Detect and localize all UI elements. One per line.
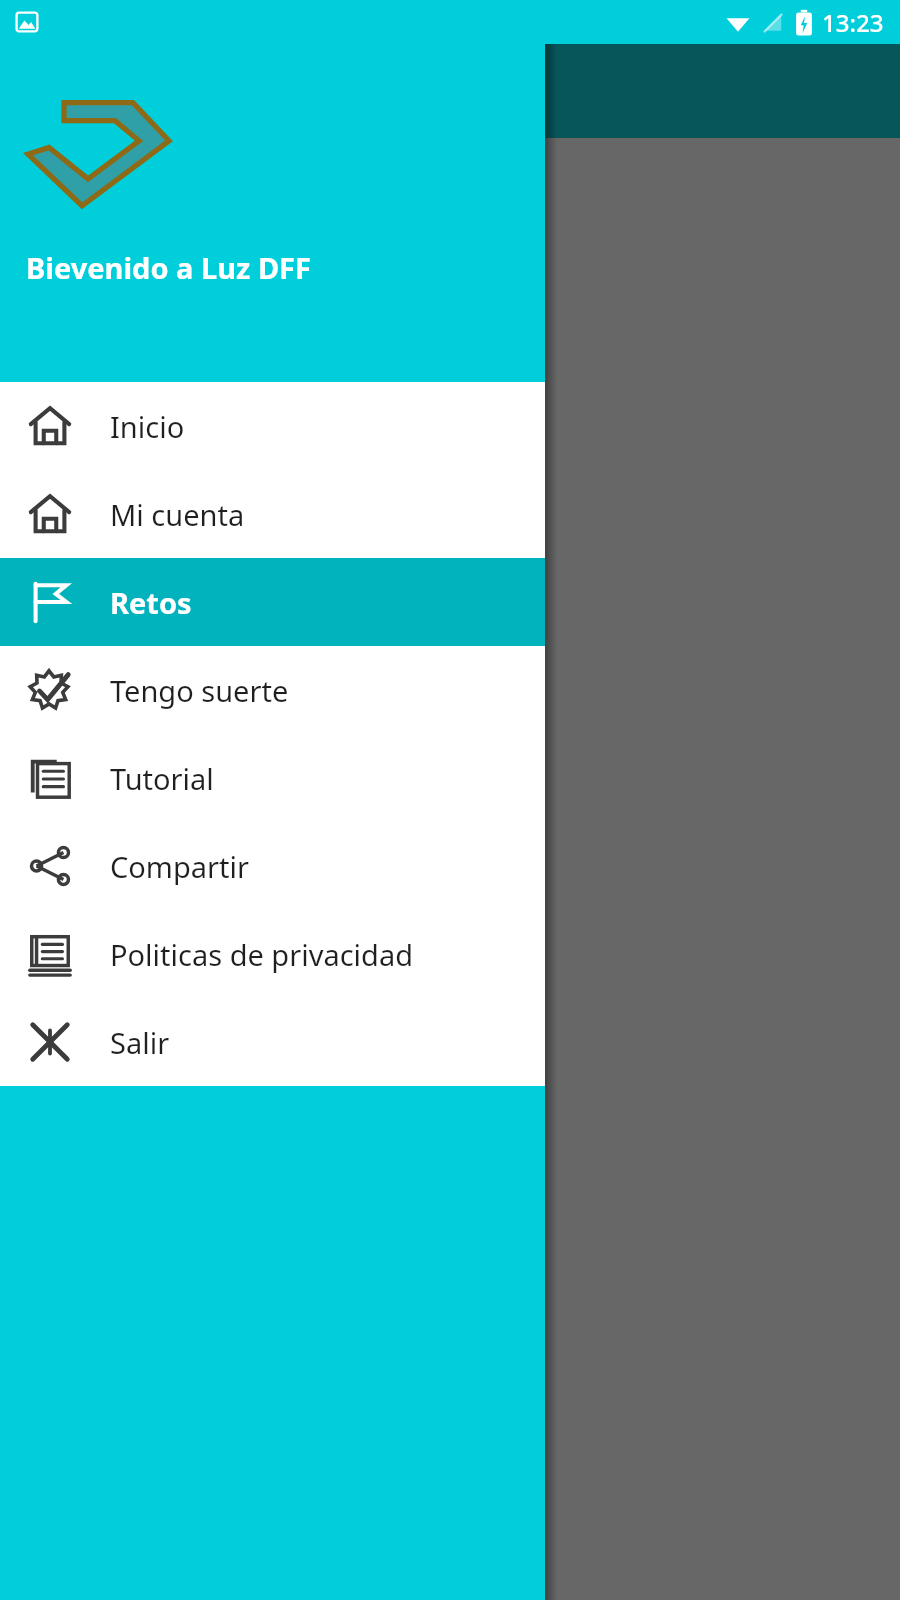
staticText: VALIENTES [17,884,447,990]
button[interactable]: Salir [0,998,545,1086]
staticText: VALIENTES [23,884,453,990]
button[interactable]: Inicio [0,382,545,470]
staticText: VALIENTES [20,884,450,990]
button[interactable]: Tutorial [0,734,545,822]
staticText: Compartir [110,847,249,886]
staticText: Mi cuenta [110,495,245,534]
staticText: Inicio [110,407,185,446]
button[interactable]: Tengo suerte [0,646,545,734]
staticText: valientes!!!👊 [48,785,235,826]
staticText: DE [20,994,121,1100]
staticText: solo tendrás que responder [48,689,438,730]
staticText: VALIENTES [20,881,450,987]
staticText: Salir [110,1023,170,1062]
staticText: a todo lo que pido, suerte [48,737,411,778]
button[interactable]: Retos [0,558,545,646]
staticText: a por tu regalo prometido, [48,641,421,682]
staticText: DE [23,994,124,1100]
staticText: VALIENTES [20,878,450,984]
staticText: no será tan sencillo [48,545,320,586]
staticText: VALIENTES [23,881,453,987]
button[interactable]: Compartir [0,822,545,910]
staticText: 13:23 [822,6,884,39]
staticText: DE [23,988,124,1094]
staticText: DE [17,994,118,1100]
button[interactable]: Politicas de privacidad [0,910,545,998]
staticText: DE [20,988,121,1094]
staticText: DE [23,991,124,1097]
staticText: Retos [110,583,192,622]
button[interactable]: Mi cuenta [0,470,545,558]
staticText: Bievenido a Luz [26,359,336,413]
staticText: DE [17,991,118,1097]
staticText: VALIENTES [23,878,453,984]
staticText: tendrás que ser hábil, ven [48,593,413,634]
staticText: VALIENTES [17,881,447,987]
staticText: DE [20,991,121,1097]
staticText: Tengo suerte [110,671,289,710]
staticText: Politicas de privacidad [110,935,413,974]
staticText: DE [17,988,118,1094]
staticText: todas las pruebas comprarte [48,497,453,538]
staticText: Tutorial [110,759,214,798]
staticText: VALIENTES [17,878,447,984]
staticText: Bievenido a Luz DFF [26,248,311,287]
